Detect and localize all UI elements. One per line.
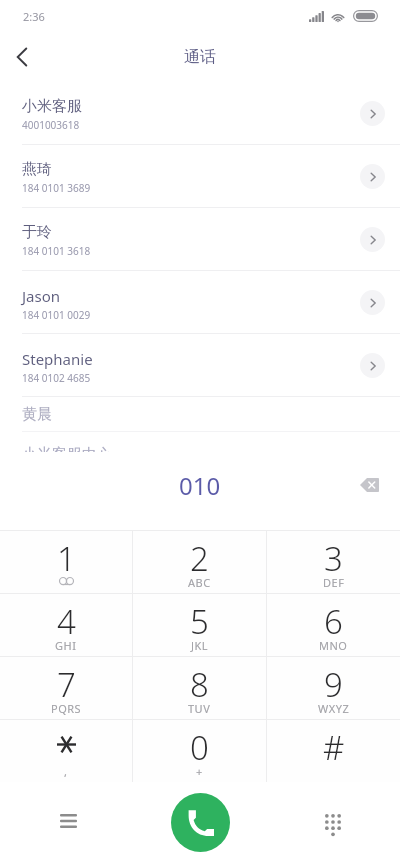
- button[interactable]: 5: [133, 594, 266, 656]
- button[interactable]: 1: [0, 531, 132, 593]
- staticText: 于玲: [22, 223, 52, 242]
- staticText: MNO: [319, 638, 348, 653]
- button[interactable]: Back: [1, 36, 43, 78]
- button[interactable]: Menu: [46, 799, 90, 843]
- staticText: 黄晨: [22, 405, 52, 424]
- staticText: Stephanie: [22, 349, 93, 369]
- button[interactable]: Call: [171, 793, 230, 852]
- staticText: 2:36: [23, 9, 45, 24]
- staticText: #: [323, 725, 345, 770]
- staticText: 4001003618: [22, 118, 80, 132]
- button[interactable]: Dialpad: [311, 802, 355, 846]
- button[interactable]: 4: [0, 594, 132, 656]
- staticText: 184 0102 4685: [22, 371, 91, 385]
- staticText: 燕琦: [22, 160, 52, 179]
- button[interactable]: ,: [0, 720, 132, 782]
- button[interactable]: 黄晨: [0, 397, 400, 431]
- button[interactable]: 6: [267, 594, 400, 656]
- staticText: 184 0101 3618: [22, 244, 91, 258]
- staticText: 184 0101 0029: [22, 308, 91, 322]
- staticText: 4: [57, 599, 76, 644]
- staticText: 9: [324, 662, 343, 707]
- staticText: 8: [190, 662, 209, 707]
- button[interactable]: 小米客服中心: [0, 432, 400, 453]
- button[interactable]: 燕琦: [0, 145, 400, 207]
- staticText: PQRS: [51, 701, 82, 716]
- button[interactable]: Backspace: [349, 465, 389, 505]
- button[interactable]: #: [267, 720, 400, 782]
- staticText: 小米客服: [22, 97, 82, 116]
- button[interactable]: Stephanie: [0, 334, 400, 396]
- staticText: 通话: [184, 47, 216, 67]
- staticText: 010: [179, 469, 221, 502]
- staticText: 184 0101 3689: [22, 181, 91, 195]
- button[interactable]: 3: [267, 531, 400, 593]
- button[interactable]: Jason: [0, 271, 400, 333]
- button[interactable]: 7: [0, 657, 132, 719]
- button[interactable]: 9: [267, 657, 400, 719]
- staticText: 1: [57, 536, 76, 581]
- button[interactable]: 8: [133, 657, 266, 719]
- button[interactable]: 0: [133, 720, 266, 782]
- staticText: +: [196, 764, 203, 779]
- button[interactable]: 2: [133, 531, 266, 593]
- button[interactable]: 于玲: [0, 208, 400, 270]
- staticText: ABC: [188, 575, 211, 590]
- staticText: JKL: [191, 638, 209, 653]
- staticText: 7: [57, 662, 76, 707]
- staticText: 6: [324, 599, 343, 644]
- staticText: 0: [190, 725, 209, 770]
- button[interactable]: 小米客服: [0, 82, 400, 144]
- staticText: DEF: [323, 575, 345, 590]
- staticText: Jason: [22, 286, 61, 306]
- staticText: WXYZ: [318, 701, 350, 716]
- staticText: 3: [324, 536, 343, 581]
- staticText: 2: [190, 536, 209, 581]
- staticText: ,: [64, 764, 68, 779]
- staticText: 5: [190, 599, 209, 644]
- staticText: TUV: [188, 701, 211, 716]
- staticText: GHI: [55, 638, 77, 653]
- staticText: 小米客服中心: [22, 445, 112, 453]
